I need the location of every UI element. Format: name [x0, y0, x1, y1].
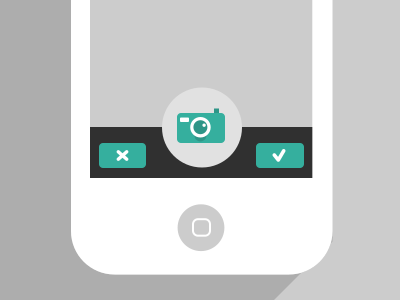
button[interactable]: Use photo [256, 143, 304, 168]
button[interactable]: Home [178, 204, 224, 251]
button[interactable]: Discard photo [99, 143, 146, 168]
